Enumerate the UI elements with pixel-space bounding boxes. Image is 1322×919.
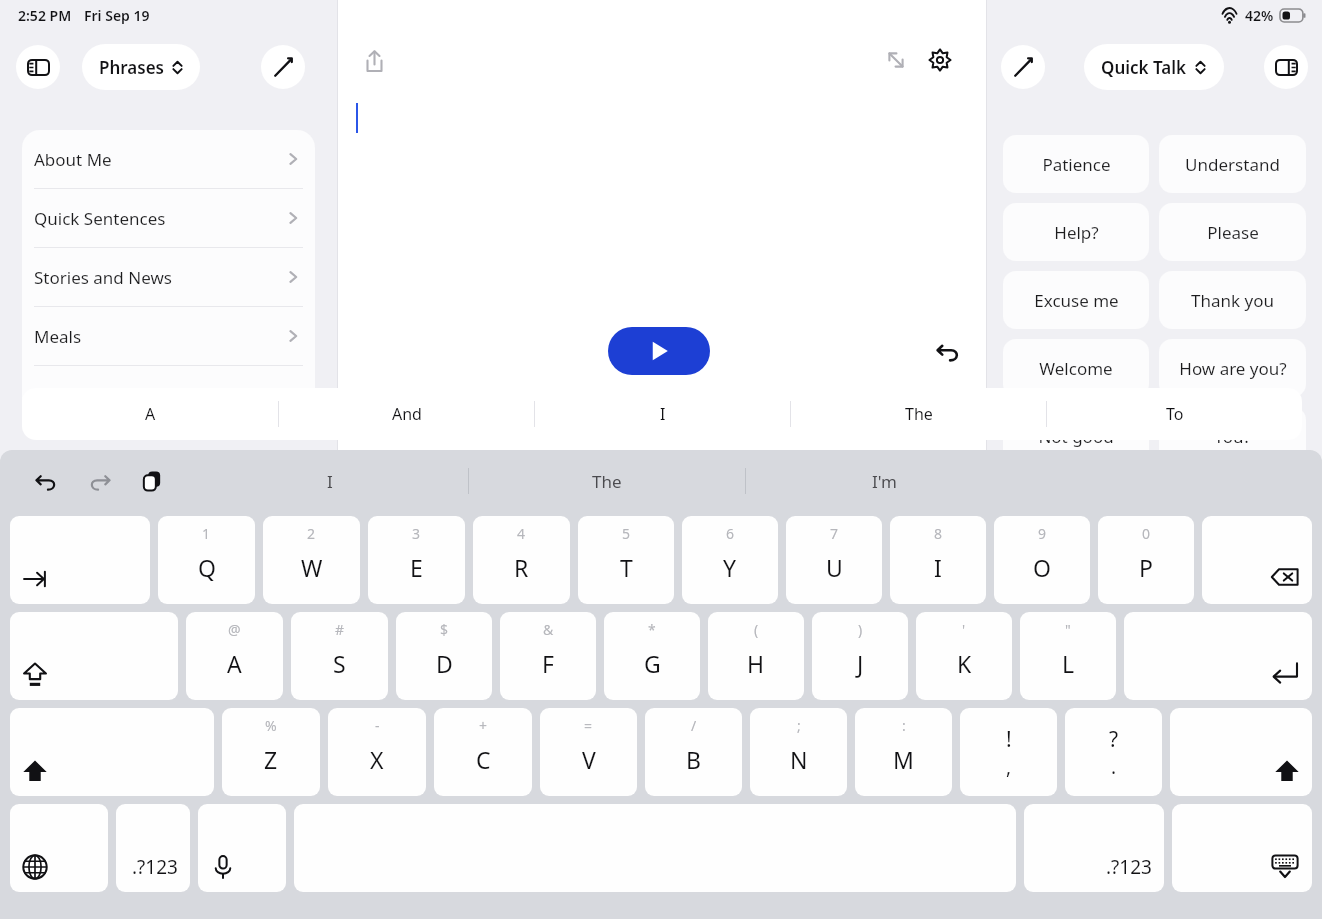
staticText: 0	[1142, 524, 1151, 543]
button[interactable]: 7	[786, 516, 882, 604]
button[interactable]: )	[812, 612, 908, 700]
button[interactable]: About Me	[22, 130, 315, 188]
button[interactable]: To	[1047, 388, 1302, 440]
button[interactable]: (	[708, 612, 804, 700]
button[interactable]: Share	[350, 37, 398, 85]
button[interactable]: 8	[890, 516, 986, 604]
button[interactable]: I	[535, 388, 790, 440]
button[interactable]: =	[540, 708, 637, 796]
staticText: 1	[202, 524, 211, 543]
button[interactable]: Speak	[608, 327, 710, 375]
button[interactable]: *	[604, 612, 700, 700]
button[interactable]: I'm	[746, 450, 1022, 512]
button[interactable]: The	[791, 388, 1046, 440]
button[interactable]: 1	[158, 516, 255, 604]
button[interactable]: Meals	[22, 307, 315, 365]
button[interactable]: Edit	[261, 45, 305, 89]
button[interactable]: .?123	[1024, 804, 1164, 892]
button[interactable]: '	[916, 612, 1012, 700]
button[interactable]: The	[469, 450, 745, 512]
button[interactable]: Key	[1202, 516, 1312, 604]
button[interactable]: Fine	[1003, 475, 1149, 533]
button[interactable]: 4	[473, 516, 570, 604]
button[interactable]: Key	[10, 708, 214, 796]
button[interactable]: Undo	[28, 463, 64, 499]
staticText: 7	[830, 524, 839, 543]
button[interactable]: Key	[10, 516, 150, 604]
button[interactable]: And	[279, 388, 534, 440]
staticText: Excuse me	[1034, 289, 1119, 312]
button[interactable]: Welcome	[1003, 339, 1149, 397]
button[interactable]: Key	[198, 804, 286, 892]
button[interactable]: ?	[1065, 708, 1162, 796]
staticText: B	[686, 744, 701, 775]
button[interactable]: 0	[1098, 516, 1194, 604]
button[interactable]: "	[1020, 612, 1116, 700]
staticText: =	[584, 716, 593, 735]
button[interactable]: 6	[682, 516, 778, 604]
button[interactable]: Please	[1159, 203, 1306, 261]
button[interactable]: &	[500, 612, 596, 700]
button[interactable]: Thank you	[1159, 271, 1306, 329]
button[interactable]: .?123	[116, 804, 190, 892]
staticText: )	[858, 620, 863, 639]
button[interactable]: ;	[750, 708, 847, 796]
staticText: V	[582, 744, 596, 775]
staticText: U	[826, 552, 843, 583]
button[interactable]: Sidebar	[16, 45, 60, 89]
staticText: L	[1062, 648, 1075, 679]
button[interactable]: $	[396, 612, 492, 700]
button[interactable]: Key	[1170, 708, 1312, 796]
button[interactable]: @	[186, 612, 283, 700]
button[interactable]: Goodbye	[1159, 475, 1306, 533]
button[interactable]: !	[960, 708, 1057, 796]
button[interactable]: How are you?	[1159, 339, 1306, 397]
button[interactable]: 3	[368, 516, 465, 604]
staticText: "	[1065, 620, 1071, 639]
button[interactable]: -	[328, 708, 426, 796]
button[interactable]: Understand	[1159, 135, 1306, 193]
button[interactable]: Stories and News	[22, 248, 315, 306]
button[interactable]: A	[22, 388, 278, 440]
button[interactable]: Key	[10, 804, 108, 892]
staticText: G	[644, 648, 661, 679]
staticText: -	[375, 716, 380, 735]
button[interactable]: Redo	[82, 463, 118, 499]
button[interactable]: /	[645, 708, 742, 796]
button[interactable]: Not good	[1003, 407, 1149, 465]
button[interactable]: Help?	[1003, 203, 1149, 261]
button[interactable]: Key	[1172, 804, 1312, 892]
button[interactable]: +	[434, 708, 532, 796]
button[interactable]: Edit	[1001, 45, 1045, 89]
button[interactable]: Key	[1124, 612, 1312, 700]
button[interactable]: %	[222, 708, 320, 796]
button[interactable]: Key	[10, 612, 178, 700]
button[interactable]: Quick Sentences	[22, 189, 315, 247]
staticText: Welcome	[1039, 357, 1113, 380]
button[interactable]: Patience	[1003, 135, 1149, 193]
button[interactable]: I	[192, 450, 468, 512]
button[interactable]: Phrases	[82, 44, 200, 90]
staticText: .?123	[132, 854, 178, 880]
button[interactable]: Panel	[1264, 45, 1308, 89]
button[interactable]: Settings	[918, 38, 962, 82]
button[interactable]: Undo	[923, 326, 973, 376]
button[interactable]: :	[855, 708, 952, 796]
staticText: W	[301, 552, 323, 583]
button[interactable]: 9	[994, 516, 1090, 604]
button[interactable]: #	[291, 612, 388, 700]
button[interactable]: Medical Appointments	[22, 366, 315, 424]
staticText: +	[479, 716, 488, 735]
button[interactable]: Expand	[874, 38, 918, 82]
button[interactable]: Excuse me	[1003, 271, 1149, 329]
staticText: (	[754, 620, 759, 639]
button[interactable]: 5	[578, 516, 674, 604]
button[interactable]: You?	[1159, 407, 1306, 465]
staticText: :	[902, 716, 906, 735]
button[interactable]: Paste	[134, 463, 170, 499]
button[interactable]: 2	[263, 516, 360, 604]
button[interactable]: Quick Talk	[1084, 44, 1224, 90]
staticText: %	[265, 716, 277, 735]
